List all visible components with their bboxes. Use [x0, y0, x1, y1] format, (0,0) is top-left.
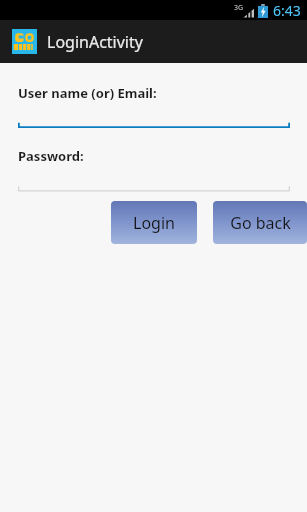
button[interactable]: Login — [111, 201, 197, 244]
staticText: Go back — [230, 212, 291, 234]
staticText: 6:43 — [273, 1, 301, 20]
button[interactable]: Go back — [213, 201, 307, 244]
staticText: 3G — [234, 3, 244, 13]
staticText: Password: — [18, 147, 84, 165]
staticText: User name (or) Email: — [18, 84, 157, 102]
staticText: Login — [133, 212, 175, 234]
other: App icon — [12, 29, 37, 54]
staticText: LoginActivity — [47, 31, 143, 53]
